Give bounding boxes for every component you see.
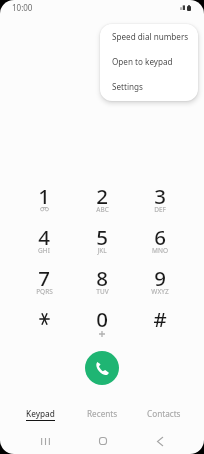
- button[interactable]: Settings: [100, 74, 198, 99]
- button[interactable]: Call: [85, 351, 119, 385]
- staticText: MNO: [152, 246, 168, 255]
- staticText: ABC: [96, 205, 109, 214]
- button[interactable]: Contacts: [133, 404, 195, 422]
- staticText: #: [153, 305, 167, 333]
- staticText: DEF: [154, 205, 166, 214]
- button[interactable]: Speed dial numbers: [100, 24, 198, 49]
- button[interactable]: 3: [131, 184, 189, 225]
- staticText: WXYZ: [151, 287, 169, 296]
- staticText: PQRS: [36, 287, 53, 296]
- staticText: JKL: [97, 246, 107, 255]
- staticText: Recents: [87, 408, 118, 419]
- staticText: 6: [154, 223, 166, 251]
- button[interactable]: Recents: [71, 404, 133, 422]
- button[interactable]: 5: [73, 225, 131, 266]
- staticText: Contacts: [147, 408, 181, 419]
- button[interactable]: 4: [15, 225, 73, 266]
- staticText: GHI: [38, 246, 50, 255]
- button[interactable]: 6: [131, 225, 189, 266]
- staticText: 0: [96, 305, 108, 333]
- button[interactable]: [15, 307, 73, 348]
- staticText: Open to keypad: [112, 56, 173, 67]
- staticText: 3: [154, 182, 166, 210]
- staticText: 5: [96, 223, 108, 251]
- staticText: 1: [38, 182, 50, 210]
- button[interactable]: Recent apps: [16, 430, 74, 452]
- button[interactable]: 9: [131, 266, 189, 307]
- staticText: 10:00: [12, 2, 33, 13]
- button[interactable]: 8: [73, 266, 131, 307]
- staticText: Keypad: [26, 408, 55, 419]
- staticText: 8: [96, 264, 108, 292]
- staticText: 4: [38, 223, 50, 251]
- staticText: 7: [38, 264, 50, 292]
- staticText: Speed dial numbers: [112, 31, 189, 42]
- button[interactable]: 0: [73, 307, 131, 348]
- staticText: 2: [96, 182, 108, 210]
- button[interactable]: 2: [73, 184, 131, 225]
- button[interactable]: Keypad: [9, 404, 71, 422]
- button[interactable]: Back: [131, 430, 188, 452]
- button[interactable]: #: [131, 307, 189, 348]
- staticText: Settings: [112, 81, 143, 92]
- staticText: 9: [154, 264, 166, 292]
- button[interactable]: Home: [74, 430, 131, 452]
- button[interactable]: 7: [15, 266, 73, 307]
- button[interactable]: Open to keypad: [100, 49, 198, 74]
- staticText: TUV: [96, 287, 109, 296]
- button[interactable]: 1: [15, 184, 73, 225]
